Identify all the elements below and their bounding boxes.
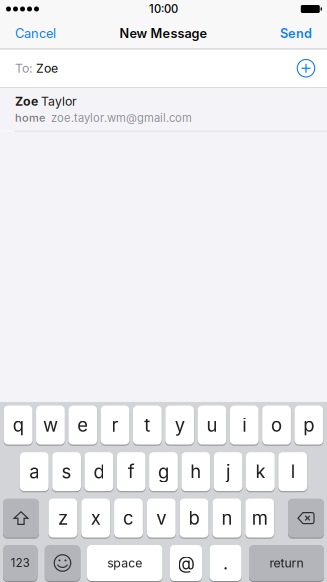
button[interactable]: Zoe Taylor [0,88,327,131]
button[interactable]: s [52,452,81,491]
button[interactable]: c [114,499,143,538]
button[interactable]: Shift [3,499,39,538]
staticText: return [269,556,303,570]
button[interactable]: space [87,545,162,581]
staticText: x [91,507,101,529]
button[interactable]: d [84,452,113,491]
staticText: f [128,460,135,483]
staticText: p [303,414,314,436]
button[interactable]: a [20,452,49,491]
staticText: a [29,460,39,483]
button[interactable]: g [149,452,178,491]
staticText: g [158,460,169,483]
button[interactable]: e [68,406,97,445]
staticText: Zoe [36,61,58,76]
staticText: z [58,507,68,529]
button[interactable]: w [36,406,65,445]
staticText: i [242,414,246,436]
staticText: w [43,414,58,436]
staticText: j [226,460,230,483]
button[interactable]: k [246,452,275,491]
staticText: k [255,460,265,483]
button[interactable]: @ [170,545,202,581]
button[interactable]: z [48,499,77,538]
button[interactable]: t [133,406,162,445]
staticText: s [62,460,72,483]
staticText: n [221,507,232,529]
staticText: b [189,507,200,529]
button[interactable]: Cancel [15,26,56,41]
staticText: @ [177,552,194,574]
button[interactable]: Emoji [45,545,80,581]
staticText: space [107,556,142,570]
button[interactable]: j [214,452,242,491]
staticText: u [206,414,217,436]
button[interactable]: m [245,499,274,538]
button[interactable]: v [147,499,176,538]
staticText: r [111,414,118,436]
staticText: t [144,414,150,436]
button[interactable]: Send [280,26,312,41]
button[interactable]: p [294,406,323,445]
staticText: . [223,552,228,574]
staticText: home [15,111,45,124]
button[interactable]: n [212,499,241,538]
button[interactable]: . [209,545,241,581]
staticText: o [271,414,282,436]
button[interactable]: u [197,406,226,445]
staticText: Zoe Taylor [15,94,77,108]
staticText: To: [15,61,36,76]
button[interactable]: b [180,499,208,538]
button[interactable]: y [165,406,194,445]
button[interactable]: return [249,545,324,581]
staticText: m [252,507,268,529]
button[interactable]: h [181,452,210,491]
button[interactable]: Add Contact [295,57,317,79]
button[interactable]: r [101,406,129,445]
staticText: c [123,507,134,529]
button[interactable]: o [262,406,291,445]
staticText: l [291,460,295,483]
staticText: q [13,414,24,436]
staticText: Cancel [15,26,56,41]
button[interactable]: 123 [3,545,37,581]
button[interactable]: f [117,452,146,491]
staticText: 123 [11,556,30,570]
staticText: h [190,460,201,483]
staticText: zoe.taylor.wm@gmail.com [51,111,192,125]
button[interactable]: l [278,452,307,491]
button[interactable]: x [81,499,110,538]
staticText: d [93,460,104,483]
staticText: New Message [119,26,207,41]
button[interactable]: i [230,406,259,445]
staticText: v [156,507,166,529]
staticText: 10:00 [149,2,178,16]
button[interactable]: q [4,406,32,445]
staticText: y [175,414,185,436]
staticText: e [77,414,88,436]
staticText: Send [280,26,312,41]
button[interactable]: Delete [288,499,324,538]
